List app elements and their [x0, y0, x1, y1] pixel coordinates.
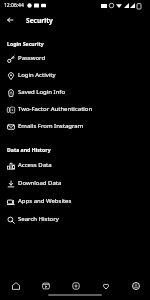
button[interactable]: Activity [91, 276, 121, 295]
button[interactable]: Create [61, 276, 91, 295]
button[interactable]: Back [0, 11, 19, 29]
button[interactable]: Two-Factor Authentication [0, 100, 150, 117]
button[interactable]: Login Activity [0, 66, 150, 83]
staticText: Saved Login Info [18, 88, 66, 96]
staticText: Login Activity [18, 71, 56, 79]
staticText: Search History [18, 215, 59, 223]
staticText: Download Data [18, 179, 62, 187]
button[interactable]: Search History [0, 210, 150, 228]
button[interactable]: Emails From Instagram [0, 117, 150, 134]
staticText: Apps and Websites [18, 197, 72, 205]
staticText: Access Data [18, 161, 52, 169]
staticText: Password [18, 54, 46, 62]
button[interactable]: Profile [121, 276, 150, 295]
staticText: Data and History [7, 146, 51, 153]
button[interactable]: Apps and Websites [0, 192, 150, 210]
staticText: Two-Factor Authentication [18, 105, 93, 113]
button[interactable]: Reels [31, 276, 61, 295]
staticText: Login Security [7, 40, 44, 47]
staticText: Emails From Instagram [18, 122, 84, 130]
staticText: 12:06:44 [4, 2, 24, 9]
button[interactable]: Saved Login Info [0, 83, 150, 100]
button[interactable]: Home [1, 276, 31, 295]
button[interactable]: Download Data [0, 174, 150, 192]
button[interactable]: Password [0, 49, 150, 66]
staticText: Security [26, 16, 53, 25]
button[interactable]: Access Data [0, 156, 150, 174]
